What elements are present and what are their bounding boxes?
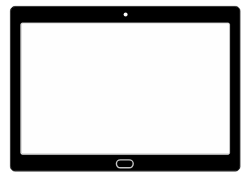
button[interactable]: Tablet display: [20, 23, 230, 155]
button[interactable]: Home button: [116, 160, 133, 168]
